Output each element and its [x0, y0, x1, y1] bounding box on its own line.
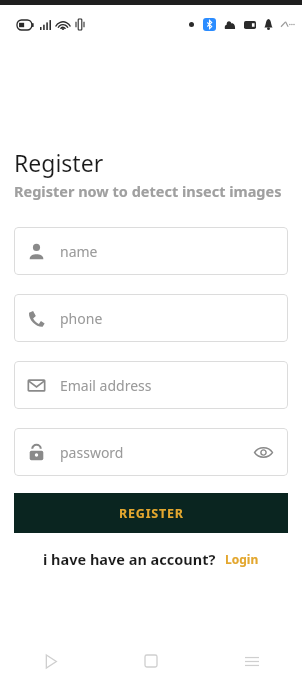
button[interactable]: Login: [225, 551, 259, 567]
button[interactable]: Back: [0, 640, 100, 682]
staticText: name: [60, 242, 274, 261]
button[interactable]: Email address: [14, 361, 288, 409]
button[interactable]: Home: [100, 640, 201, 682]
button[interactable]: password: [14, 428, 288, 476]
staticText: Login: [225, 551, 259, 567]
button[interactable]: phone: [14, 294, 288, 342]
staticText: password: [60, 443, 252, 462]
staticText: Email address: [60, 376, 274, 395]
button[interactable]: REGISTER: [14, 493, 288, 533]
button[interactable]: Toggle password visibility: [252, 441, 274, 463]
staticText: Register: [14, 147, 104, 178]
staticText: phone: [60, 309, 274, 328]
button[interactable]: name: [14, 227, 288, 275]
button[interactable]: Recent apps: [201, 640, 302, 682]
staticText: Register now to detect insect images: [14, 181, 282, 201]
staticText: REGISTER: [119, 505, 184, 522]
staticText: i have have an account?: [43, 549, 216, 569]
